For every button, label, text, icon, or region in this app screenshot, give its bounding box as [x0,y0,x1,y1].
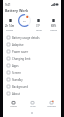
button[interactable]: 88% [46,13,61,33]
button[interactable]: Screen [3,69,61,76]
button[interactable]: Charging limit [3,55,61,62]
button[interactable]: Background [3,83,61,90]
staticText: 31° [36,24,41,28]
staticText: Background [12,85,28,89]
staticText: 64 [23,19,26,22]
staticText: About [12,92,20,96]
staticText: Power saver [12,50,29,54]
staticText: Stats [30,105,36,108]
staticText: Battery Work [5,8,29,13]
staticText: Settings [47,105,56,108]
staticText: 88% [51,24,57,28]
staticText: Apps [12,64,19,68]
staticText: Charging limit [12,57,31,61]
staticText: Screen [6,29,14,32]
button[interactable]: Home [3,99,23,110]
staticText: Temp [36,29,42,32]
button[interactable]: 2h 14m [3,13,17,33]
button[interactable]: Standby [3,76,61,83]
button[interactable]: 31° [31,13,46,33]
staticText: Screen [12,71,21,75]
button[interactable]: Power saver [3,48,61,55]
staticText: 2h 14m [5,24,15,28]
button[interactable]: Battery usage details [3,34,61,41]
staticText: Home [10,105,17,108]
staticText: Adaptive [12,43,24,47]
staticText: 9:41 [5,3,11,7]
button[interactable]: Settings [42,99,61,110]
button[interactable]: Stats [23,99,42,110]
button[interactable]: Adaptive [3,41,61,48]
button[interactable]: 64 [17,13,31,33]
button[interactable]: Apps [3,62,61,69]
staticText: Standby [12,78,23,82]
staticText: Battery usage details [12,36,40,40]
staticText: Health [50,29,58,32]
button[interactable]: About [3,90,61,97]
